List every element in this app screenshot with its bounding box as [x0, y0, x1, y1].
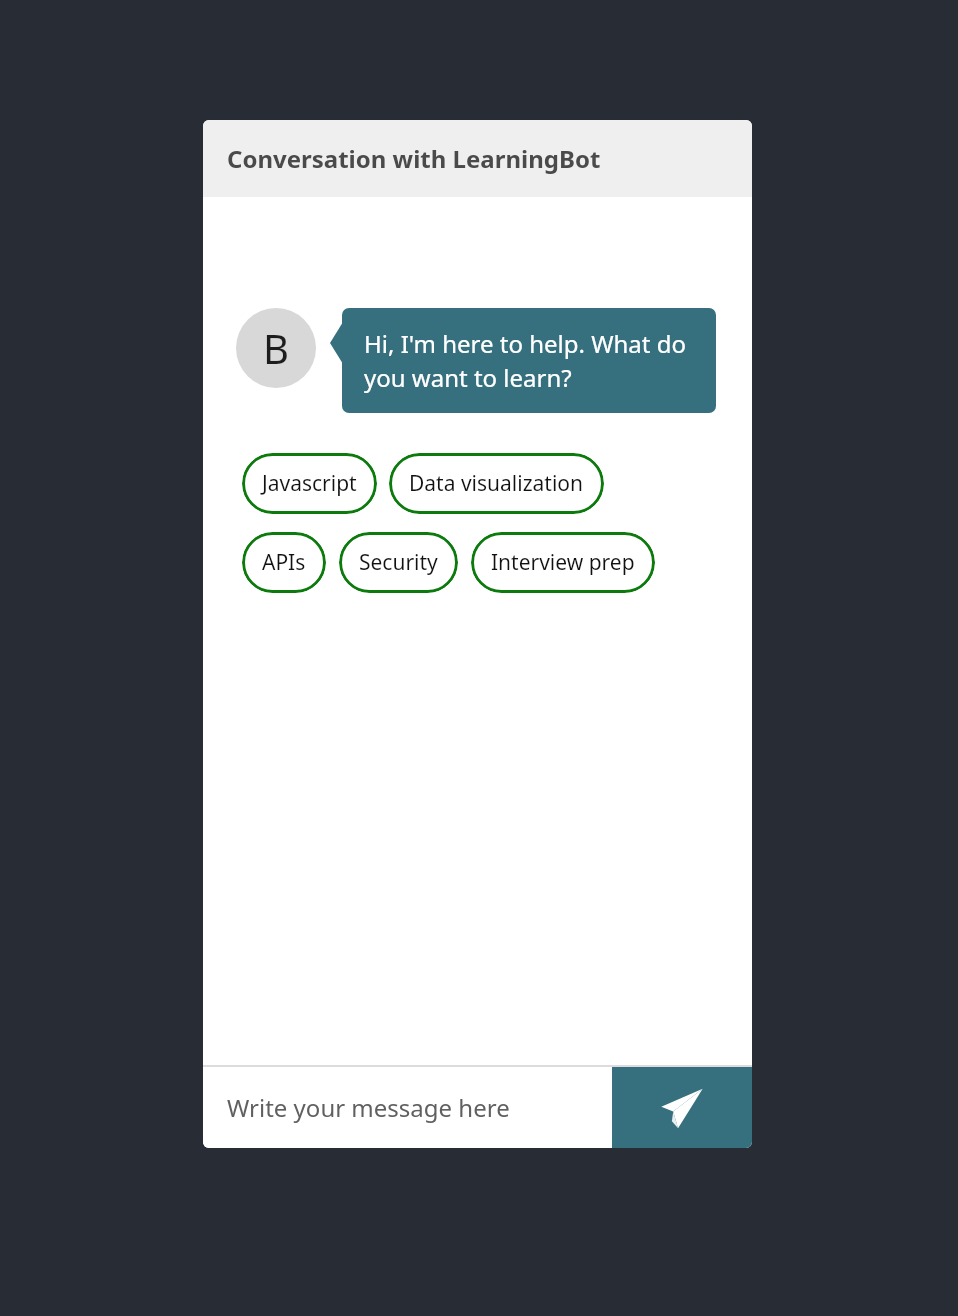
- button[interactable]: Data visualization: [389, 453, 604, 514]
- staticText: Data visualization: [409, 469, 584, 498]
- staticText: Security: [359, 548, 438, 577]
- button[interactable]: Security: [339, 532, 458, 593]
- staticText: Hi, I'm here to help. What do you want t…: [364, 327, 694, 395]
- staticText: Write your message here: [227, 1091, 510, 1124]
- button[interactable]: Send: [612, 1067, 752, 1148]
- staticText: Conversation with LearningBot: [227, 142, 601, 175]
- staticText: Javascript: [262, 469, 357, 498]
- button[interactable]: Javascript: [242, 453, 377, 514]
- button[interactable]: B: [236, 308, 316, 388]
- button[interactable]: APIs: [242, 532, 326, 593]
- button[interactable]: Interview prep: [471, 532, 655, 593]
- button[interactable]: Write your message here: [203, 1067, 612, 1148]
- staticText: Interview prep: [491, 548, 635, 577]
- staticText: APIs: [262, 548, 306, 577]
- button[interactable]: Conversation with LearningBot: [203, 120, 752, 197]
- staticText: B: [263, 321, 289, 375]
- button[interactable]: Hi, I'm here to help. What do you want t…: [342, 308, 716, 413]
